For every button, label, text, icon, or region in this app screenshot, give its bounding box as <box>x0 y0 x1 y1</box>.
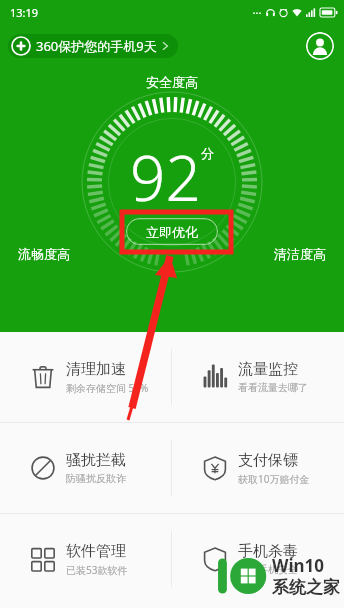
staticText: 清洁度高 <box>274 246 326 262</box>
button[interactable]: 清理加速 <box>0 332 172 422</box>
staticText: 92 <box>130 135 201 219</box>
staticText: 支付保镖 <box>238 451 298 470</box>
staticText: 防骚扰反欺诈 <box>66 472 126 485</box>
staticText: 已装53款软件 <box>66 563 128 577</box>
button[interactable]: Account <box>306 32 334 60</box>
staticText: 360保护您的手机9天 <box>36 37 157 55</box>
staticText: 获取10万赔付金 <box>238 472 310 486</box>
staticText: Win10 <box>272 554 325 577</box>
staticText: 流量监控 <box>238 360 298 379</box>
staticText: 软件管理 <box>66 542 126 561</box>
button[interactable]: 流量监控 <box>172 332 344 422</box>
staticText: 立即优化 <box>146 224 198 240</box>
staticText: 剩余存储空间 55% <box>66 381 149 395</box>
button[interactable]: 360保护您的手机9天 <box>8 34 178 58</box>
button[interactable]: 骚扰拦截 <box>0 423 172 513</box>
button[interactable]: 手机杀毒 <box>172 514 344 604</box>
button[interactable]: 软件管理 <box>0 514 172 604</box>
staticText: 骚扰拦截 <box>66 451 126 470</box>
staticText: 13:19 <box>10 5 39 20</box>
staticText: 安全度高 <box>146 74 198 90</box>
staticText: 看看流量去哪了 <box>238 381 308 394</box>
staticText: 系统之家 <box>272 577 340 598</box>
staticText: 流畅度高 <box>18 246 70 262</box>
staticText: 分 <box>201 145 214 161</box>
button[interactable]: 立即优化 <box>126 218 218 245</box>
staticText: 保护手机安全 <box>238 563 298 576</box>
button[interactable]: 支付保镖 <box>172 423 344 513</box>
staticText: 清理加速 <box>66 360 126 379</box>
staticText: 手机杀毒 <box>238 542 298 561</box>
